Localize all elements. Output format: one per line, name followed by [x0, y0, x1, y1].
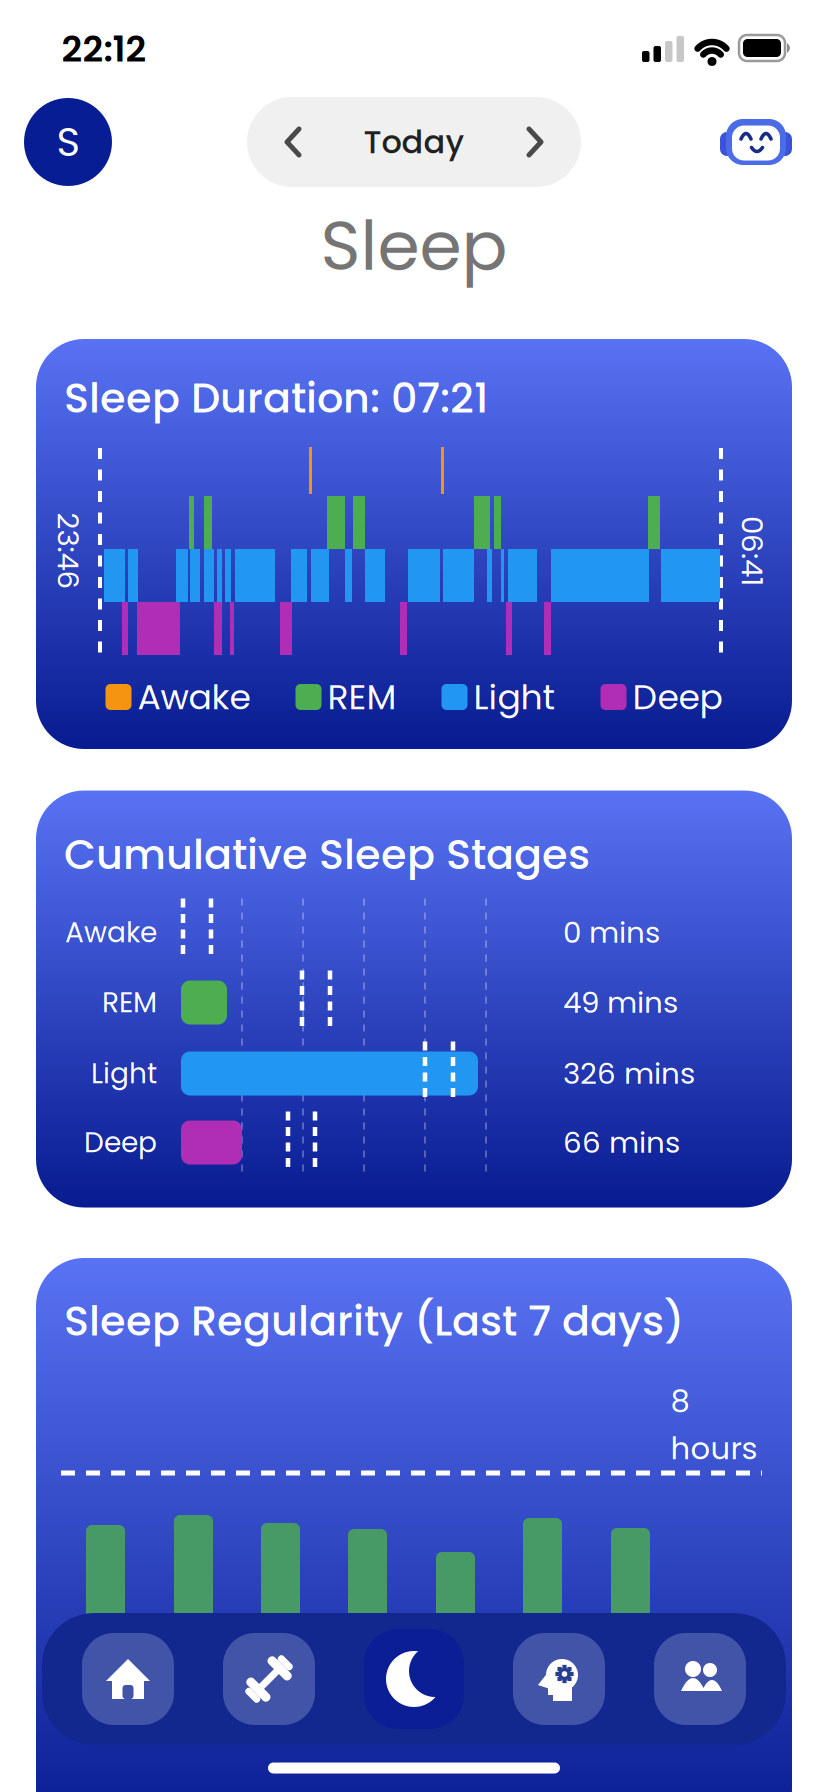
staticText: 326 mins	[563, 1053, 695, 1094]
staticText: Sleep Duration: 07:21	[64, 369, 488, 427]
staticText: 66 mins	[563, 1122, 680, 1163]
button[interactable]	[258, 97, 328, 187]
staticText: Deep	[84, 1123, 157, 1162]
button[interactable]	[500, 97, 570, 187]
staticText: S	[56, 114, 79, 170]
button[interactable]	[364, 1629, 464, 1729]
button[interactable]: Today	[363, 97, 464, 187]
staticText: Awake	[137, 673, 250, 721]
staticText: Today	[363, 120, 464, 164]
button[interactable]	[223, 1633, 315, 1725]
staticText: REM	[327, 673, 396, 721]
staticText: Sleep Regularity (Last 7 days)	[64, 1292, 684, 1350]
button[interactable]	[719, 115, 793, 169]
staticText: Cumulative Sleep Stages	[64, 825, 590, 883]
staticText: Deep	[632, 673, 722, 721]
staticText: 8	[670, 1380, 689, 1423]
staticText: 49 mins	[563, 982, 678, 1023]
staticText: Sleep	[320, 198, 507, 294]
button[interactable]	[654, 1633, 746, 1725]
button[interactable]	[82, 1633, 174, 1725]
staticText: 22:12	[61, 24, 146, 74]
staticText: 06:41	[717, 530, 787, 572]
staticText: REM	[102, 983, 157, 1022]
staticText: Awake	[65, 913, 157, 952]
button[interactable]: S	[24, 98, 112, 186]
staticText: 23:46	[29, 530, 106, 572]
staticText: hours	[670, 1427, 757, 1470]
staticText: Light	[91, 1054, 157, 1093]
staticText: 0 mins	[563, 912, 660, 953]
staticText: Light	[473, 673, 555, 721]
button[interactable]	[513, 1633, 605, 1725]
